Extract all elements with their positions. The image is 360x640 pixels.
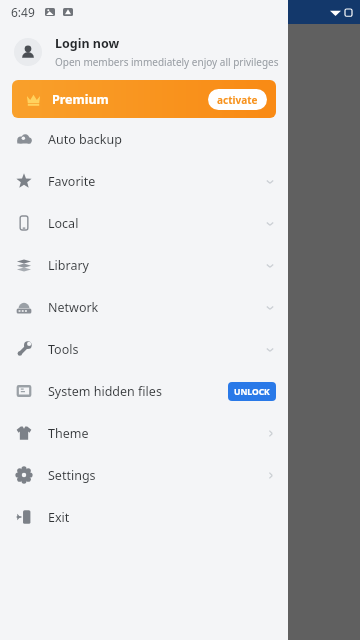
button[interactable]: Network — [0, 286, 288, 328]
staticText: Premium — [52, 91, 109, 108]
staticText: Settings — [48, 467, 96, 484]
staticText: Auto backup — [48, 131, 122, 148]
staticText: activate — [217, 93, 258, 107]
staticText: Tools — [48, 341, 79, 358]
staticText: 6:49 — [11, 4, 35, 20]
staticText: Favorite — [48, 173, 96, 190]
button[interactable]: Library — [0, 244, 288, 286]
button[interactable]: activate — [208, 89, 267, 110]
button[interactable]: Premium — [12, 80, 276, 118]
button[interactable]: Theme — [0, 412, 288, 454]
staticText: Local — [48, 215, 79, 232]
button[interactable]: Exit — [0, 496, 288, 538]
staticText: Open members immediately enjoy all privi… — [55, 55, 279, 69]
staticText: Network — [48, 299, 99, 316]
button[interactable]: Favorite — [0, 160, 288, 202]
button[interactable]: UNLOCK — [228, 382, 276, 401]
button[interactable]: Login now — [0, 24, 288, 80]
button[interactable]: Auto backup — [0, 118, 288, 160]
button[interactable]: Settings — [0, 454, 288, 496]
button[interactable]: System hidden files — [0, 370, 288, 412]
staticText: Exit — [48, 509, 70, 526]
staticText: Login now — [55, 35, 120, 52]
staticText: Theme — [48, 425, 89, 442]
staticText: UNLOCK — [234, 386, 270, 398]
button[interactable]: Tools — [0, 328, 288, 370]
staticText: System hidden files — [48, 383, 162, 400]
staticText: Library — [48, 257, 89, 274]
button[interactable]: Local — [0, 202, 288, 244]
